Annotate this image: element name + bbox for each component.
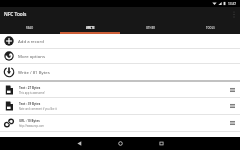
button[interactable]: URL : 10 Bytes [0, 115, 240, 131]
staticText: Add a record [18, 38, 44, 44]
button[interactable]: READ [0, 21, 60, 34]
button[interactable]: Home [106, 137, 134, 150]
staticText: READ [26, 26, 34, 30]
staticText: Text : 27 Bytes [19, 86, 41, 90]
button[interactable]: Write / 81 Bytes [0, 64, 240, 80]
button[interactable]: OTHER [120, 21, 180, 34]
button[interactable]: Text : 39 Bytes [0, 98, 240, 114]
staticText: OTHER [146, 26, 155, 30]
button[interactable]: Reorder [224, 115, 240, 131]
staticText: http://www.nxp.com [19, 124, 44, 128]
button[interactable]: TOOLS [180, 21, 240, 34]
button[interactable]: More options [227, 7, 240, 21]
staticText: More options [18, 53, 45, 59]
button[interactable]: Text : 27 Bytes [0, 82, 240, 97]
button[interactable]: Back [65, 137, 93, 150]
staticText: 13:37 [228, 2, 237, 6]
button[interactable]: WRITE [60, 21, 120, 34]
staticText: This app is awesome! [19, 91, 45, 95]
staticText: TOOLS [206, 26, 215, 30]
staticText: NFC Tools [4, 11, 27, 18]
button[interactable]: Add a record [0, 34, 240, 48]
staticText: WRITE [86, 26, 95, 30]
button[interactable]: More options [0, 49, 240, 63]
button[interactable]: Reorder [224, 82, 240, 97]
button[interactable]: Reorder [224, 98, 240, 114]
staticText: URL : 10 Bytes [19, 119, 40, 123]
staticText: Rate and comment if you like it [19, 107, 57, 111]
staticText: Text : 39 Bytes [19, 102, 41, 106]
staticText: Write / 81 Bytes [18, 69, 50, 75]
button[interactable]: Recents [147, 137, 175, 150]
